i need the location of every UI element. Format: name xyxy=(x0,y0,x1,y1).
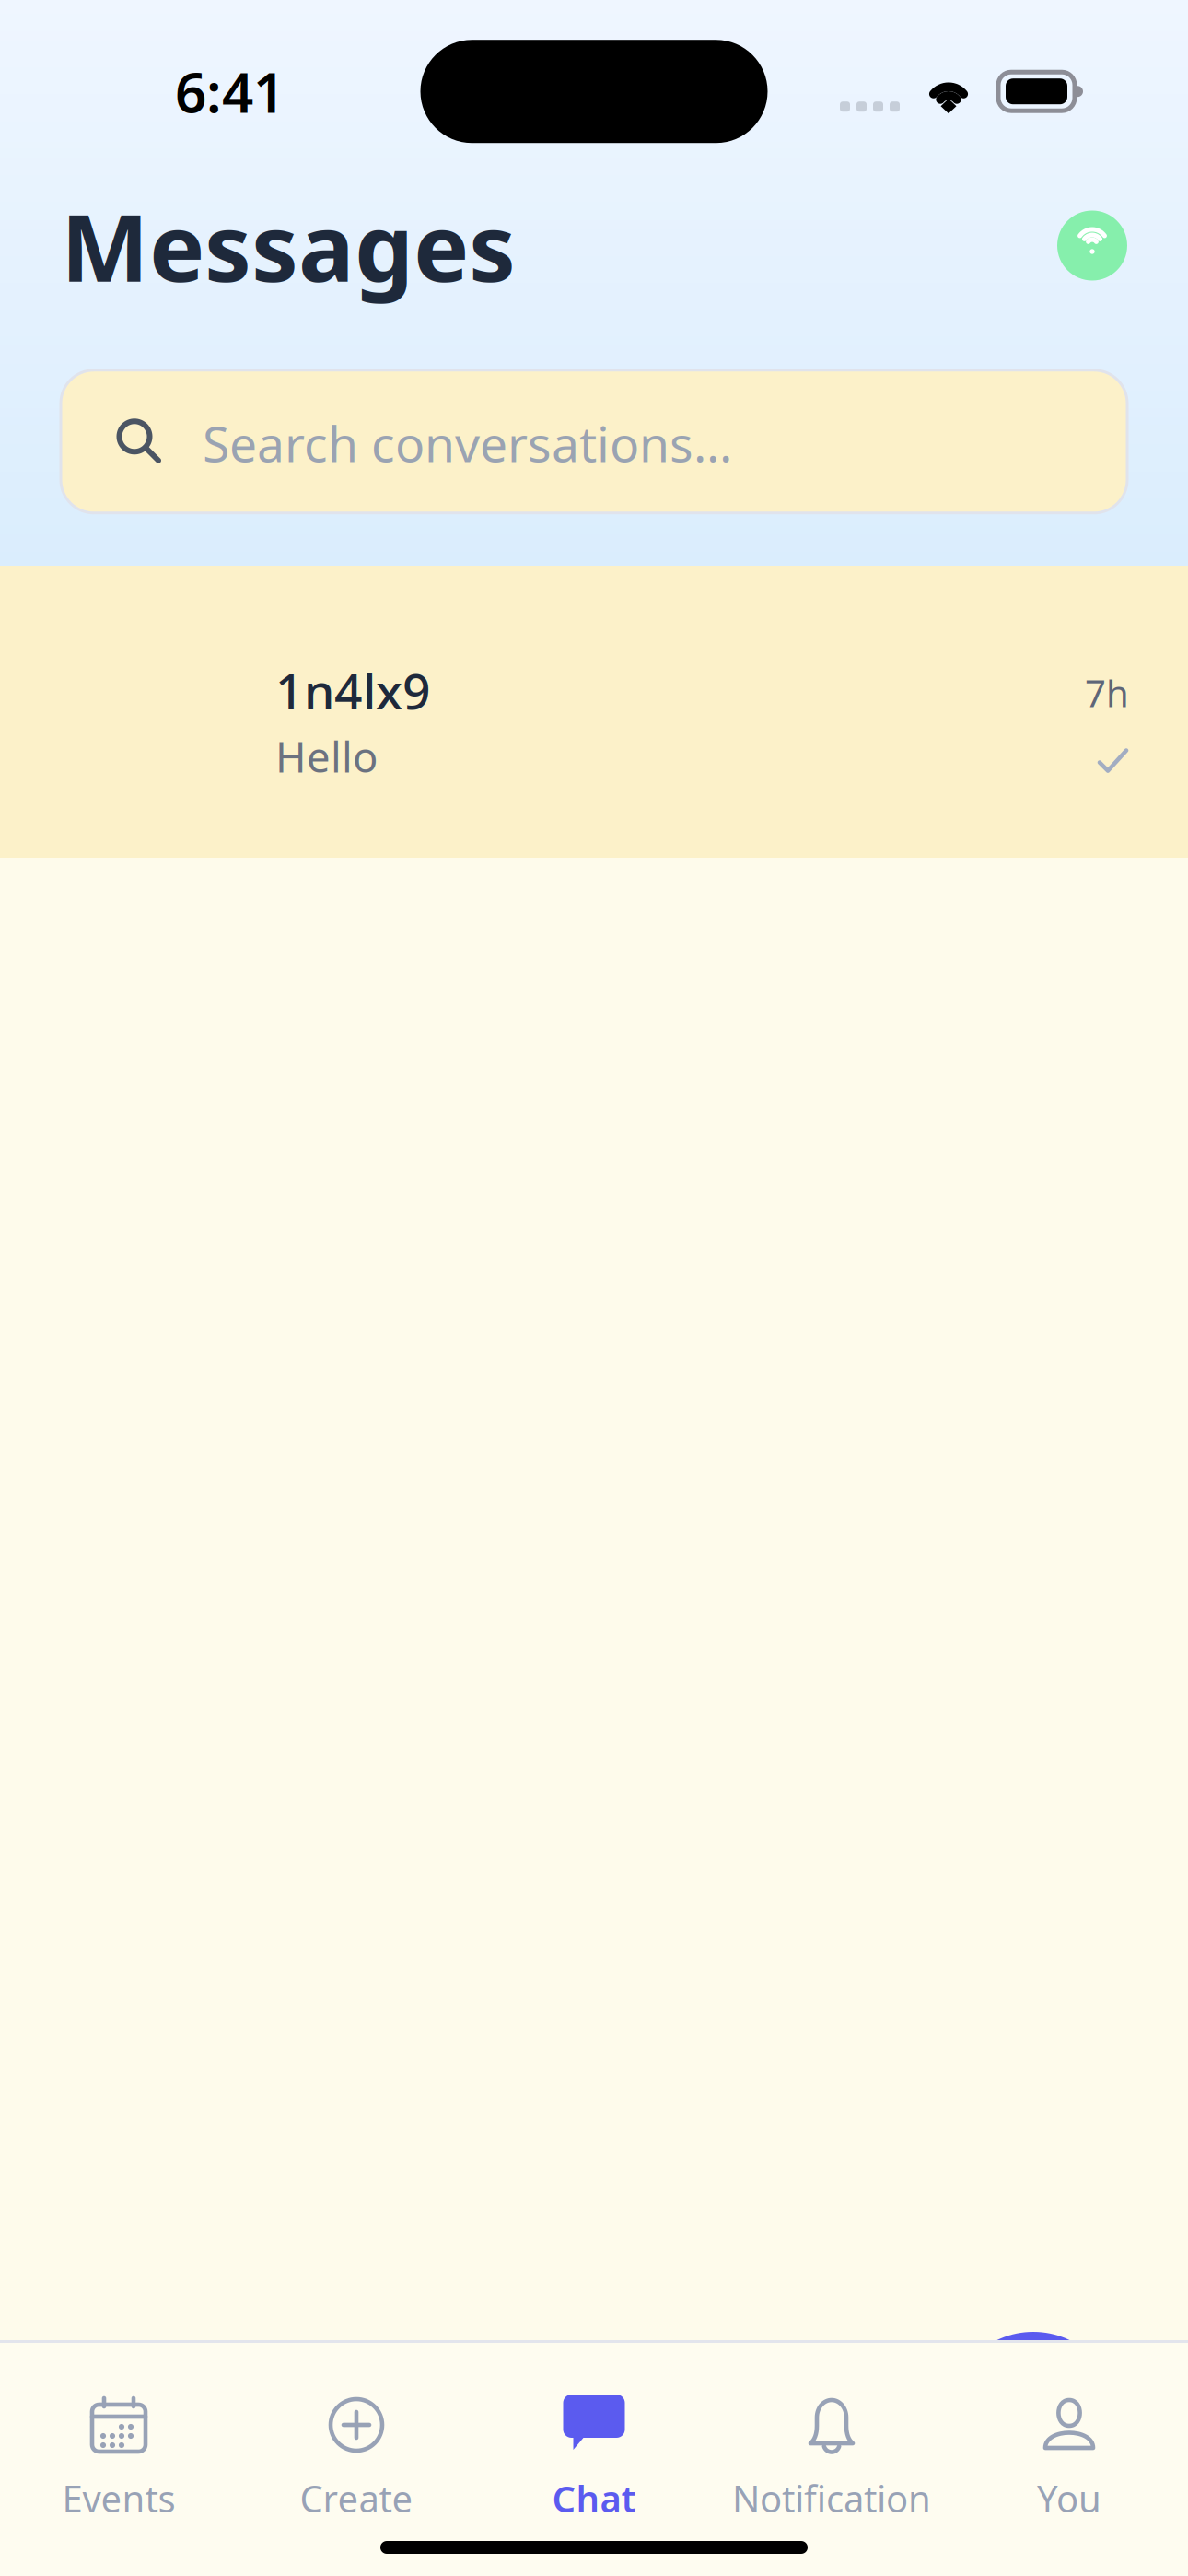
staticText: You xyxy=(1037,2474,1101,2523)
staticText: Notification xyxy=(732,2474,931,2523)
button[interactable]: Connection status xyxy=(1057,211,1127,281)
staticText: Hello xyxy=(275,729,378,784)
staticText: 6:41 xyxy=(175,55,285,128)
staticText: Chat xyxy=(552,2474,636,2523)
button[interactable]: Chat xyxy=(475,2343,713,2523)
button[interactable]: You xyxy=(950,2343,1188,2523)
staticText: 7h xyxy=(1085,668,1129,717)
staticText: Events xyxy=(62,2474,175,2523)
staticText: Messages xyxy=(61,184,516,308)
staticText: Search conversations... xyxy=(203,410,732,476)
button[interactable]: Notification xyxy=(713,2343,950,2523)
button[interactable]: Search conversations... xyxy=(61,370,1127,513)
staticText: 1n4lx9 xyxy=(275,658,431,723)
staticText: Create xyxy=(300,2474,413,2523)
button[interactable]: Events xyxy=(0,2343,238,2523)
button[interactable]: 1n4lx9 xyxy=(0,566,1188,858)
button[interactable]: Create xyxy=(238,2343,475,2523)
